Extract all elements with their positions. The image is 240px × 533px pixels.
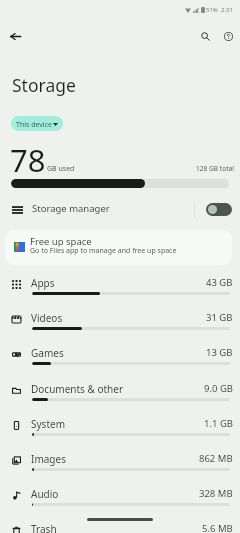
staticText: 51% [206, 6, 218, 14]
staticText: 128 GB total [196, 164, 234, 173]
button[interactable]: System [0, 417, 240, 452]
staticText: 43 GB [206, 276, 233, 289]
staticText: System [31, 417, 65, 431]
button[interactable]: This device [11, 116, 63, 131]
staticText: Games [31, 346, 64, 360]
button[interactable]: Documents & other [0, 382, 240, 417]
staticText: 9.0 GB [204, 382, 233, 395]
button[interactable]: Apps [0, 276, 240, 311]
staticText: 78 [10, 139, 46, 181]
button[interactable]: Storage manager [0, 198, 240, 225]
staticText: GB used [47, 164, 75, 174]
staticText: 5.6 MB [202, 522, 233, 533]
staticText: Trash [31, 522, 57, 533]
button[interactable]: Free up space [5, 230, 232, 265]
staticText: Storage manager [32, 202, 110, 215]
button[interactable]: Navigate up [3, 24, 27, 48]
staticText: Audio [31, 487, 59, 501]
button[interactable]: Games [0, 346, 240, 381]
button[interactable]: Images [0, 452, 240, 487]
button[interactable]: Audio [0, 487, 240, 522]
button[interactable]: Videos [0, 311, 240, 346]
staticText: Storage [12, 73, 76, 97]
staticText: 31 GB [206, 311, 233, 324]
staticText: Videos [31, 311, 63, 325]
staticText: Free up space [30, 235, 92, 248]
staticText: Images [31, 452, 66, 466]
staticText: 2:31 [221, 6, 233, 14]
staticText: 328 MB [199, 487, 233, 500]
staticText: Documents & other [31, 382, 124, 396]
button[interactable]: Trash [0, 522, 240, 533]
staticText: This device [16, 120, 52, 130]
button[interactable]: Help [217, 25, 239, 47]
staticText: 13 GB [206, 346, 233, 359]
button[interactable]: Search [194, 25, 216, 47]
staticText: 862 MB [199, 452, 233, 465]
button[interactable]: Storage manager toggle [206, 203, 232, 216]
staticText: Apps [31, 276, 55, 290]
staticText: 1.1 GB [204, 417, 233, 430]
staticText: Go to Files app to manage and free up sp… [30, 246, 177, 256]
